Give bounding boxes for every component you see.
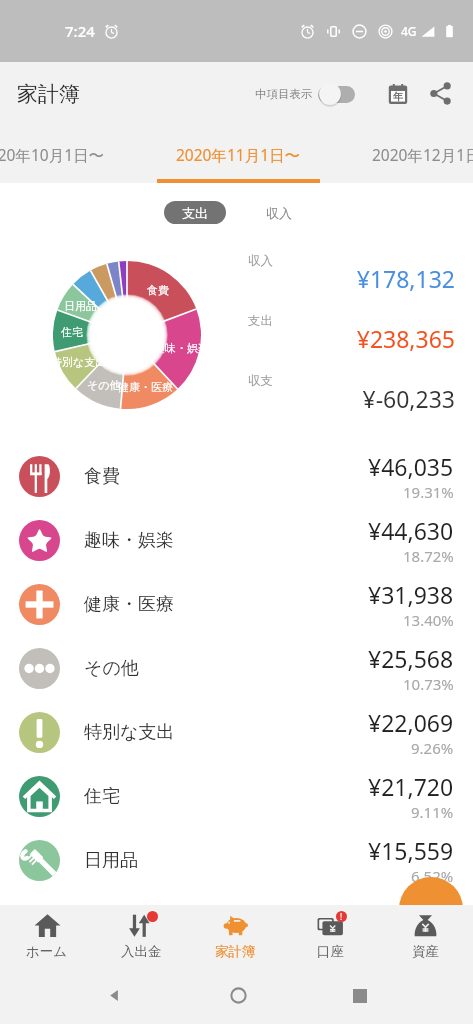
staticText: 日用品 xyxy=(64,299,97,313)
staticText: 2020年10月1日〜 xyxy=(0,144,105,165)
staticText: ¥31,938 xyxy=(368,579,454,610)
button[interactable]: Yearly view xyxy=(379,75,416,112)
staticText: 家計簿 xyxy=(215,943,256,960)
button[interactable]: Toggle sub categories xyxy=(247,73,363,115)
staticText: ¥46,035 xyxy=(368,451,454,482)
staticText: 健康・医療 xyxy=(118,380,173,394)
button[interactable]: 資産 xyxy=(378,905,473,967)
button[interactable]: 支出 xyxy=(164,201,226,224)
staticText: その他 xyxy=(87,378,121,392)
button[interactable]: Share xyxy=(422,75,459,112)
staticText: 趣味・娯楽 xyxy=(154,341,201,355)
button[interactable]: 健康・医療 xyxy=(0,572,473,636)
staticText: 住宅 xyxy=(84,785,120,808)
staticText: 4G xyxy=(401,23,417,39)
staticText: ¥15,559 xyxy=(368,835,454,866)
staticText: 18.72% xyxy=(403,546,454,566)
button[interactable]: 特別な支出 xyxy=(0,700,473,764)
staticText: 口座 xyxy=(317,943,344,960)
staticText: 13.40% xyxy=(403,610,454,630)
staticText: 入出金 xyxy=(121,943,162,960)
staticText: 9.26% xyxy=(411,738,454,758)
staticText: その他 xyxy=(84,657,139,680)
button[interactable]: 2020年10月1日〜 xyxy=(0,125,140,183)
button[interactable]: ホーム xyxy=(0,905,94,967)
staticText: 食費 xyxy=(84,465,120,488)
staticText: 19.31% xyxy=(403,482,454,502)
staticText: ¥178,132 xyxy=(356,263,455,294)
staticText: 特別な支出 xyxy=(53,355,107,369)
button[interactable]: 入出金 xyxy=(94,905,188,967)
button[interactable]: Add entry xyxy=(399,877,463,941)
staticText: 収入 xyxy=(248,253,273,269)
staticText: 7:24 xyxy=(65,21,95,41)
staticText: ! xyxy=(340,911,343,922)
staticText: 趣味・娯楽 xyxy=(84,529,174,552)
staticText: 健康・医療 xyxy=(84,593,174,616)
staticText: 中項目表示 xyxy=(255,87,313,101)
staticText: 収支 xyxy=(248,373,273,389)
staticText: 資産 xyxy=(412,943,439,960)
staticText: 収入 xyxy=(266,205,292,221)
button[interactable]: その他 xyxy=(0,636,473,700)
staticText: 2020年11月1日〜 xyxy=(176,144,301,165)
button[interactable]: 家計簿 xyxy=(188,905,283,967)
staticText: 年 xyxy=(393,90,403,103)
button[interactable]: ! xyxy=(283,905,378,967)
staticText: 家計簿 xyxy=(17,81,80,107)
button[interactable]: 2020年11月1日〜 xyxy=(140,125,336,183)
staticText: 6.52% xyxy=(411,866,454,886)
staticText: 特別な支出 xyxy=(84,721,175,744)
staticText: ¥25,568 xyxy=(368,643,454,674)
staticText: 10.73% xyxy=(403,674,454,694)
staticText: 住宅 xyxy=(61,325,83,339)
staticText: 9.11% xyxy=(411,802,454,822)
staticText: ¥238,365 xyxy=(356,323,455,354)
button[interactable]: 住宅 xyxy=(0,764,473,828)
staticText: ¥21,720 xyxy=(368,771,454,802)
button[interactable]: 2020年12月1日〜 xyxy=(336,125,473,183)
staticText: ホーム xyxy=(26,943,68,960)
staticText: 日用品 xyxy=(84,849,138,872)
staticText: 食費 xyxy=(147,283,169,297)
button[interactable]: 日用品 xyxy=(0,828,473,892)
button[interactable]: 収入 xyxy=(248,201,310,224)
staticText: 支出 xyxy=(182,205,208,221)
staticText: 2020年12月1日〜 xyxy=(372,144,473,165)
button[interactable]: 趣味・娯楽 xyxy=(0,508,473,572)
staticText: 支出 xyxy=(248,313,273,329)
button[interactable]: 食費 xyxy=(0,444,473,508)
staticText: ¥-60,233 xyxy=(362,383,455,414)
staticText: ¥44,630 xyxy=(368,515,454,546)
staticText: ¥22,069 xyxy=(368,707,454,738)
